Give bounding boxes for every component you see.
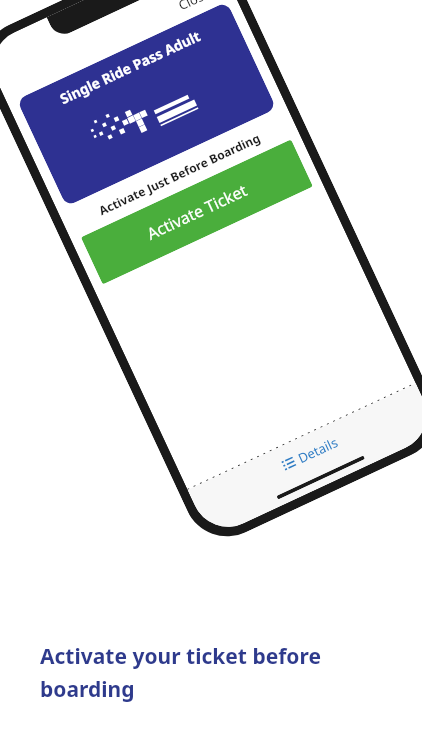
staticText: Activate Just Before Boarding — [96, 129, 262, 218]
staticText: Single Ride Pass Adult — [57, 26, 203, 108]
button[interactable]: Activate Ticket — [81, 139, 313, 284]
staticText: boarding — [40, 675, 135, 704]
staticText: Activate Ticket — [143, 179, 250, 245]
button[interactable]: Close — [169, 0, 220, 19]
staticText: Activate your ticket before — [40, 642, 321, 671]
button[interactable]: Details — [271, 426, 350, 481]
staticText: Details — [295, 433, 341, 467]
button[interactable]: Single Ride Pass Adult — [16, 2, 277, 207]
staticText: Close — [175, 0, 213, 14]
